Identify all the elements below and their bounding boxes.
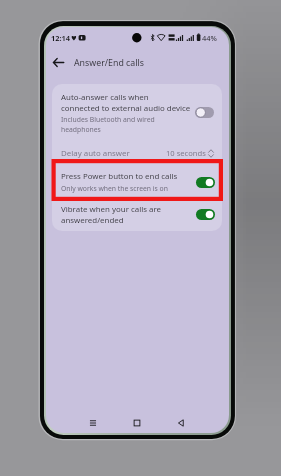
- button[interactable]: Recents: [81, 411, 105, 433]
- button[interactable]: Switch off: [195, 107, 214, 118]
- staticText: Press Power button to end calls: [61, 171, 178, 182]
- button[interactable]: Switch on: [196, 177, 215, 188]
- staticText: Auto-answer calls when connected to exte…: [61, 92, 191, 114]
- button[interactable]: Switch on: [196, 209, 215, 220]
- staticText: Delay auto answer: [61, 148, 130, 159]
- staticText: 12:14: [51, 33, 70, 43]
- button[interactable]: Auto-answer calls when connected to exte…: [52, 84, 222, 135]
- staticText: Only works when the screen is on: [61, 184, 168, 193]
- staticText: Answer/End calls: [74, 57, 144, 69]
- staticText: 10 seconds: [166, 148, 206, 158]
- button[interactable]: Press Power button to end calls: [52, 169, 222, 195]
- staticText: 44%: [202, 33, 217, 43]
- button[interactable]: Delay auto answer: [52, 144, 222, 162]
- button[interactable]: Back: [169, 411, 193, 433]
- button[interactable]: Back: [46, 49, 72, 76]
- staticText: Vibrate when your calls are answered/end…: [61, 204, 191, 226]
- button[interactable]: Vibrate when your calls are answered/end…: [52, 202, 222, 227]
- button[interactable]: Home: [125, 411, 149, 433]
- staticText: Includes Bluetooth and wired headphones: [61, 115, 155, 134]
